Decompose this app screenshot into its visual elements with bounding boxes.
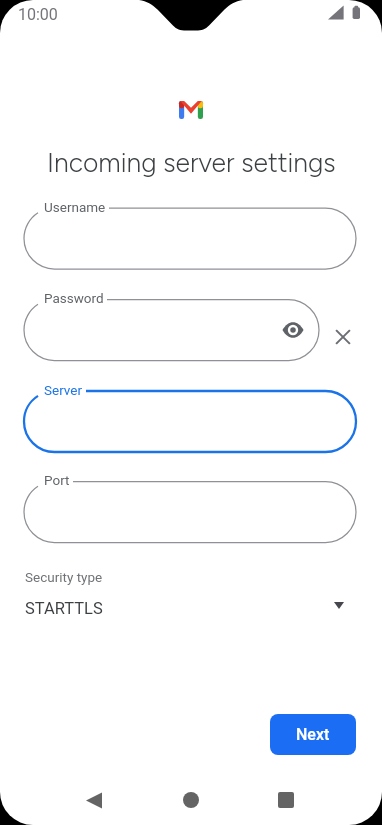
button[interactable]: Security type <box>0 564 382 628</box>
staticText: STARTTLS <box>25 599 103 618</box>
staticText: Username <box>44 199 106 215</box>
button[interactable]: Next <box>270 714 356 755</box>
staticText: Security type <box>25 569 103 585</box>
button[interactable]: Recent apps <box>262 776 310 824</box>
staticText: Incoming server settings <box>47 147 336 179</box>
staticText: Next <box>296 725 330 744</box>
button[interactable]: Clear <box>331 325 355 349</box>
staticText: Port <box>44 472 70 488</box>
staticText: Password <box>44 290 104 306</box>
button[interactable]: Back <box>70 776 118 824</box>
staticText: 10:00 <box>18 5 58 24</box>
staticText: Server <box>44 382 83 398</box>
button[interactable]: Home <box>167 776 215 824</box>
button[interactable]: Show password <box>281 318 305 342</box>
